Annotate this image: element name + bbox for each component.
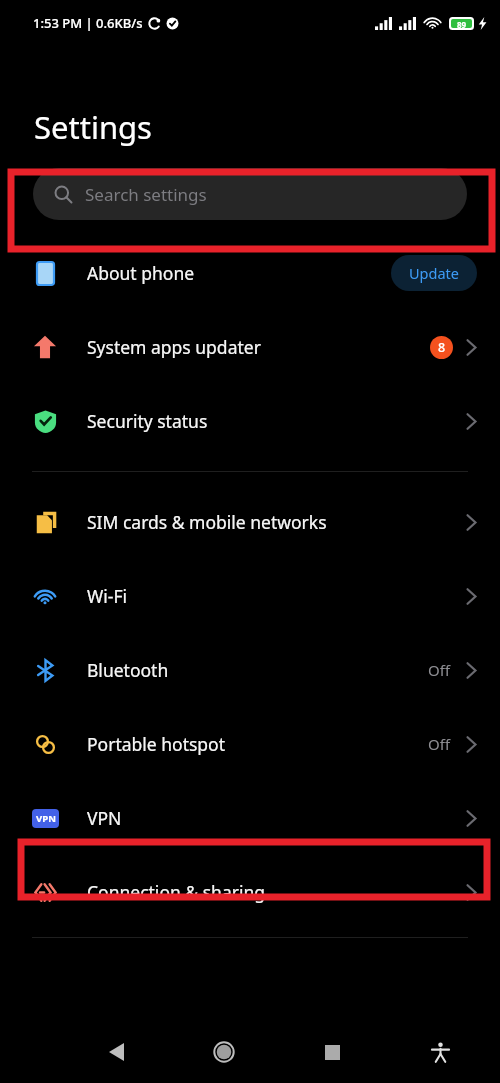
- button[interactable]: Portable hotspot: [0, 707, 500, 781]
- staticText: Bluetooth: [87, 658, 428, 682]
- button[interactable]: Bluetooth: [0, 633, 500, 707]
- button[interactable]: Wi-Fi: [0, 559, 500, 633]
- button[interactable]: Connection & sharing: [0, 855, 500, 929]
- staticText: Off: [428, 734, 451, 754]
- button[interactable]: Recents: [309, 1029, 355, 1075]
- staticText: Connection & sharing: [87, 880, 466, 904]
- staticText: About phone: [87, 261, 391, 285]
- staticText: 8: [438, 339, 446, 356]
- staticText: VPN: [87, 806, 466, 830]
- button[interactable]: VPN: [0, 781, 500, 855]
- button[interactable]: SIM cards & mobile networks: [0, 485, 500, 559]
- button[interactable]: Home: [201, 1029, 247, 1075]
- staticText: Off: [428, 660, 451, 680]
- button[interactable]: Security status: [0, 384, 500, 458]
- staticText: Wi-Fi: [87, 584, 466, 608]
- staticText: 89: [457, 19, 467, 28]
- button[interactable]: Search settings: [33, 168, 467, 220]
- staticText: Search settings: [85, 183, 207, 206]
- button[interactable]: Back: [93, 1029, 139, 1075]
- button[interactable]: Update: [391, 255, 477, 291]
- staticText: 1:53 PM | 0.6KB/s: [33, 14, 143, 32]
- staticText: SIM cards & mobile networks: [87, 510, 466, 534]
- button[interactable]: System apps updater: [0, 310, 500, 384]
- staticText: Update: [409, 263, 459, 283]
- staticText: VPN: [36, 812, 56, 825]
- staticText: Settings: [34, 106, 152, 148]
- staticText: Portable hotspot: [87, 732, 428, 756]
- staticText: System apps updater: [87, 335, 430, 359]
- button[interactable]: About phone: [0, 236, 500, 310]
- button[interactable]: Accessibility: [417, 1029, 463, 1075]
- staticText: Security status: [87, 409, 466, 433]
